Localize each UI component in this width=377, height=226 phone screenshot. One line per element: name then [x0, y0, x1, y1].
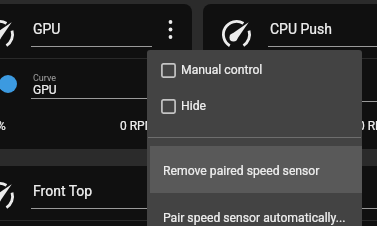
staticText: Curve [33, 73, 57, 84]
staticText: CPU Push [270, 21, 332, 37]
button[interactable]: Front Top [0, 166, 192, 226]
button[interactable]: Hide [147, 87, 362, 125]
staticText: Pair speed sensor automatically... [163, 211, 346, 225]
staticText: Hide [181, 99, 206, 113]
button[interactable]: GPU [0, 4, 192, 149]
staticText: Rear Top [270, 183, 326, 199]
button[interactable]: Remove paired speed sensor [150, 146, 362, 193]
staticText: GPU [33, 83, 57, 97]
staticText: Manual control [181, 63, 263, 77]
button[interactable]: Pair speed sensor automatically... [147, 193, 362, 226]
button[interactable]: More options [158, 17, 183, 42]
staticText: 0 RPM [120, 119, 156, 133]
staticText: GPU [33, 21, 61, 37]
staticText: 0 RPM [358, 119, 377, 133]
staticText: % [0, 119, 6, 133]
button[interactable]: Manual control [147, 51, 362, 89]
button[interactable]: Rear Top [203, 166, 377, 226]
staticText: Remove paired speed sensor [163, 164, 320, 178]
button[interactable]: CPU Push [203, 4, 377, 149]
staticText: Front Top [33, 183, 93, 199]
